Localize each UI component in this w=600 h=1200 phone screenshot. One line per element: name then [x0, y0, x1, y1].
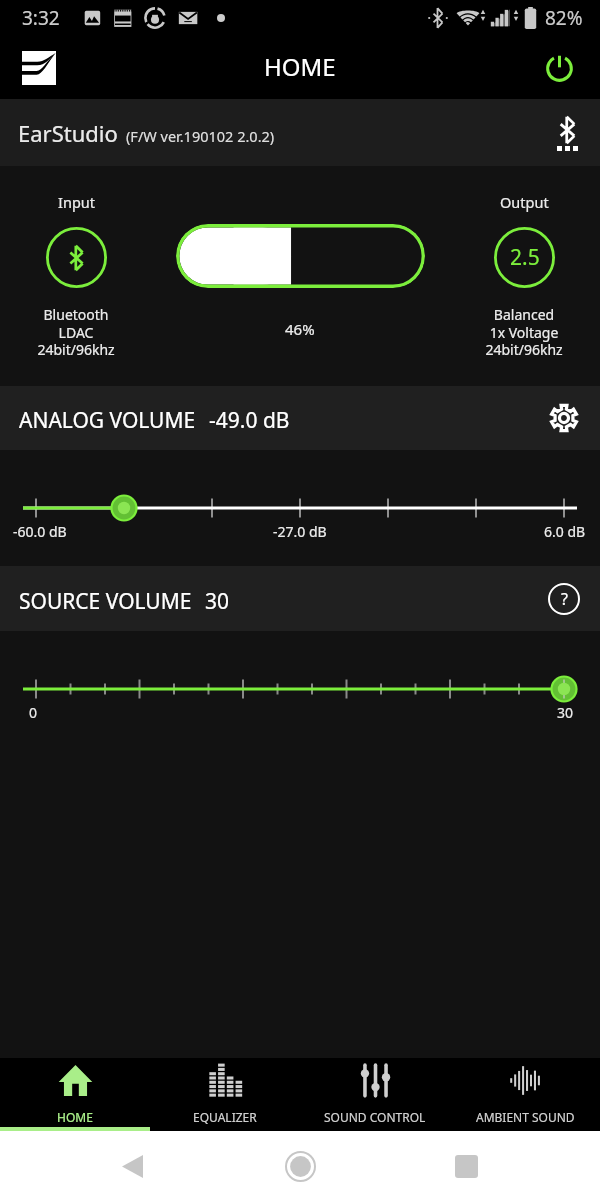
button[interactable]: AMBIENT SOUND	[450, 1058, 600, 1127]
button[interactable]: Input	[20, 192, 132, 359]
button[interactable]: Help	[536, 571, 592, 627]
staticText: 6.0 dB	[544, 522, 586, 541]
staticText: Input	[58, 192, 95, 212]
staticText: SOUND CONTROL	[324, 1109, 426, 1125]
staticText: EarStudio	[18, 118, 118, 148]
staticText: Balanced 1x Voltage 24bit/96khz	[468, 305, 580, 359]
button[interactable]: Output	[468, 192, 580, 359]
staticText: 30	[557, 703, 574, 722]
staticText: Output	[500, 192, 549, 212]
staticText: -27.0 dB	[273, 522, 327, 541]
button[interactable]: Bluetooth connection	[539, 105, 595, 161]
staticText: 3:32	[22, 5, 60, 31]
staticText: 46%	[285, 319, 315, 339]
button[interactable]: Menu	[13, 42, 65, 94]
staticText: HOME	[264, 50, 336, 83]
staticText: 30	[205, 587, 230, 616]
staticText: (F/W ver.190102 2.0.2)	[126, 126, 275, 146]
button[interactable]: Battery 46 percent	[176, 224, 425, 288]
staticText: ANALOG VOLUME	[19, 406, 196, 435]
staticText: -60.0 dB	[13, 522, 67, 541]
button[interactable]: Back	[108, 1142, 156, 1190]
button[interactable]: Power	[533, 42, 585, 94]
button[interactable]: EQUALIZER	[150, 1058, 300, 1127]
staticText: EQUALIZER	[193, 1109, 257, 1125]
button[interactable]: Analog volume settings	[536, 390, 592, 446]
button[interactable]: Home	[276, 1142, 324, 1190]
staticText: -49.0 dB	[209, 406, 290, 435]
button[interactable]: SOUND CONTROL	[300, 1058, 450, 1127]
staticText: SOURCE VOLUME	[19, 587, 192, 616]
button[interactable]: Recents	[442, 1142, 490, 1190]
button[interactable]: HOME	[0, 1058, 150, 1127]
staticText: 2.5	[510, 243, 540, 272]
staticText: AMBIENT SOUND	[476, 1109, 575, 1125]
staticText: HOME	[57, 1109, 93, 1125]
staticText: ?	[561, 588, 568, 610]
staticText: Bluetooth LDAC 24bit/96khz	[20, 305, 132, 359]
staticText: 82%	[545, 5, 583, 31]
staticText: 0	[29, 703, 38, 722]
